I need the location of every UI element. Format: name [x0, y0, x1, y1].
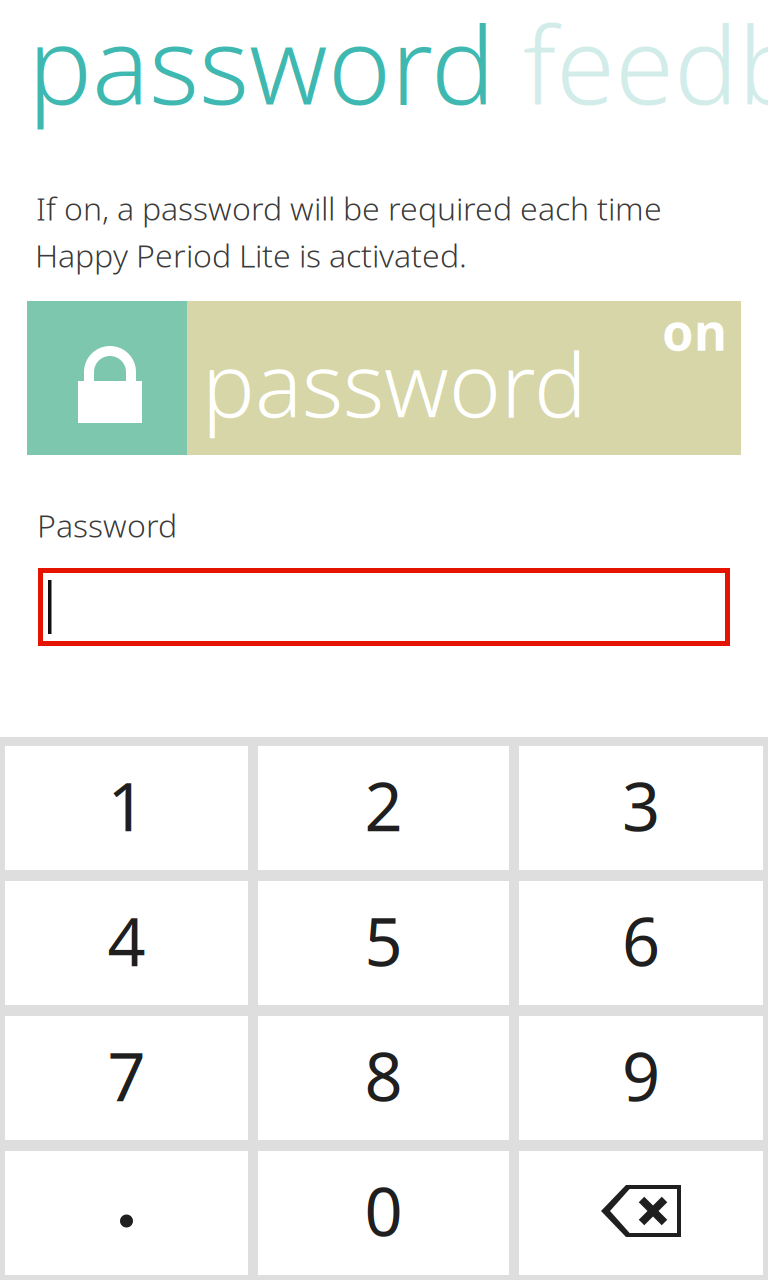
- button[interactable]: Decimal point: [5, 1151, 248, 1275]
- button[interactable]: 7: [5, 1016, 248, 1140]
- button[interactable]: 9: [519, 1016, 763, 1140]
- staticText: 5: [364, 896, 402, 985]
- staticText: 7: [107, 1031, 145, 1120]
- button[interactable]: 5: [258, 881, 509, 1005]
- staticText: 9: [622, 1031, 660, 1120]
- staticText: password: [202, 325, 587, 441]
- button[interactable]: Password field: [38, 568, 730, 646]
- staticText: 8: [364, 1031, 402, 1120]
- staticText: on: [662, 297, 727, 365]
- staticText: password: [28, 0, 495, 134]
- staticText: 1: [107, 761, 145, 850]
- button[interactable]: 6: [519, 881, 763, 1005]
- button[interactable]: Backspace: [519, 1151, 763, 1275]
- button[interactable]: 2: [258, 746, 509, 870]
- staticText: 4: [107, 896, 145, 985]
- button[interactable]: 4: [5, 881, 248, 1005]
- button[interactable]: 3: [519, 746, 763, 870]
- button[interactable]: password: [27, 301, 741, 455]
- staticText: 3: [622, 761, 660, 850]
- staticText: 6: [622, 896, 660, 985]
- staticText: Happy Period Lite is activated.: [35, 234, 467, 276]
- staticText: feedback: [523, 0, 768, 134]
- button[interactable]: 8: [258, 1016, 509, 1140]
- staticText: 2: [364, 761, 402, 850]
- staticText: 0: [364, 1166, 402, 1255]
- button[interactable]: 1: [5, 746, 248, 870]
- staticText: If on, a password will be required each …: [36, 187, 662, 229]
- staticText: Password: [37, 504, 177, 546]
- button[interactable]: 0: [258, 1151, 509, 1275]
